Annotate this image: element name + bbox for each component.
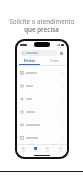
button[interactable]: [17, 92, 67, 105]
button[interactable]: Tab: [17, 145, 29, 154]
button[interactable]: Menu: [59, 51, 64, 56]
staticText: Todas solicitações: [42, 59, 67, 63]
button[interactable]: [17, 118, 67, 131]
button[interactable]: Minhas solicitações: [17, 58, 42, 65]
staticText: Minhas solicitações: [17, 59, 42, 63]
button[interactable]: Tab: [41, 145, 54, 154]
button[interactable]: [17, 105, 67, 118]
staticText: Solicite o atendimento: [9, 17, 75, 25]
staticText: que precisa: [24, 25, 59, 33]
button[interactable]: Todas solicitações: [42, 58, 67, 65]
button[interactable]: Selected tab: [29, 145, 41, 154]
button[interactable]: [17, 131, 67, 144]
button[interactable]: [17, 79, 67, 92]
button[interactable]: [17, 66, 67, 79]
button[interactable]: [20, 50, 57, 56]
button[interactable]: Tab: [54, 145, 67, 154]
